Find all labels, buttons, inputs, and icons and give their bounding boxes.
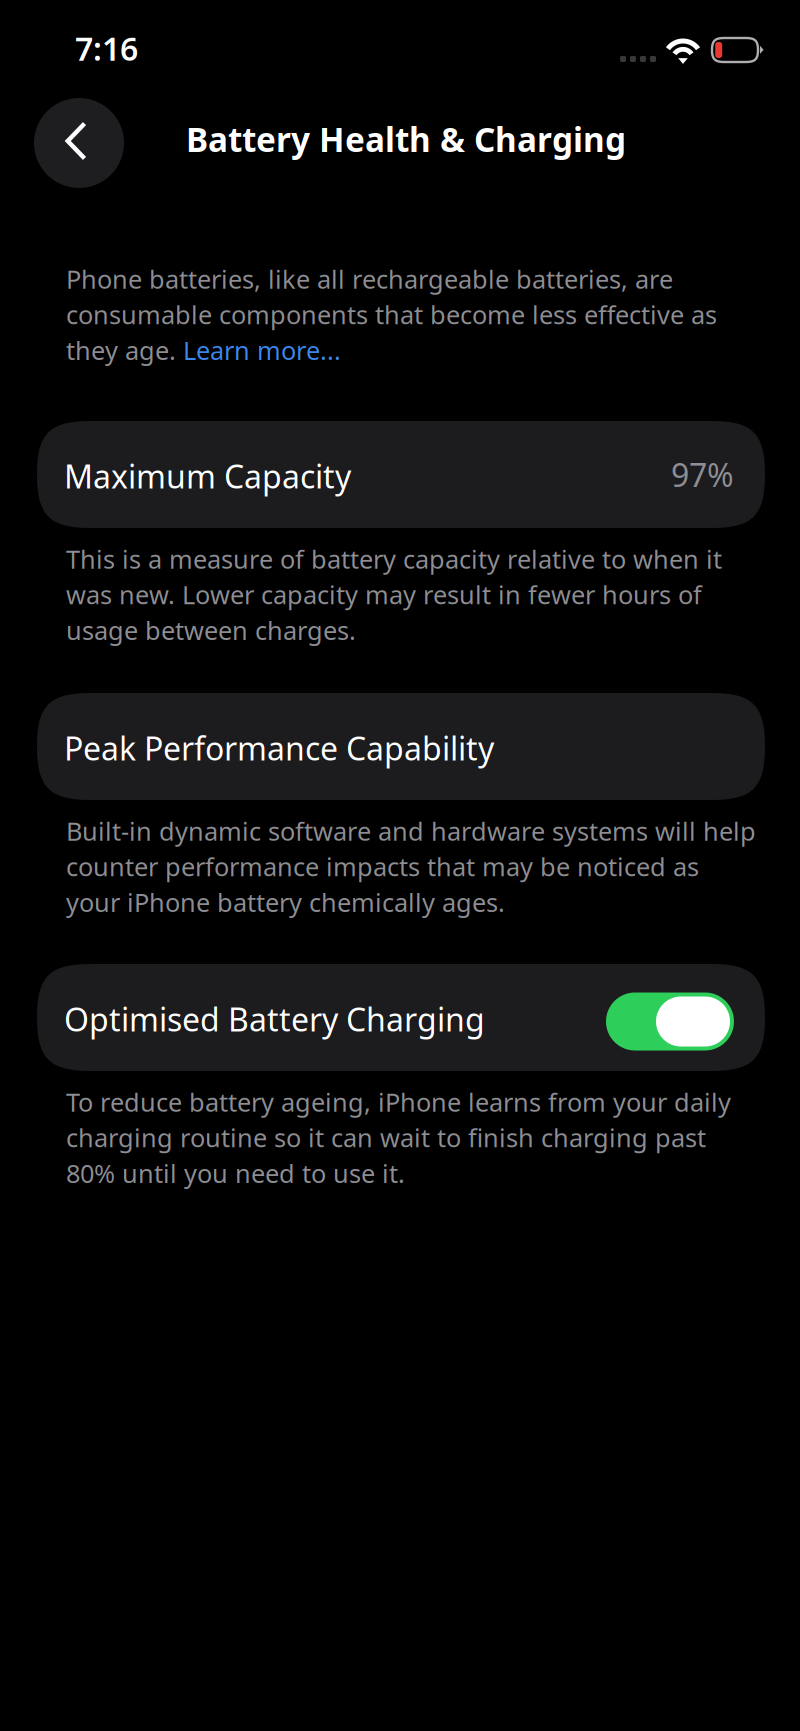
button[interactable]: Back	[34, 98, 124, 188]
staticText: Built-in dynamic software and hardware s…	[66, 814, 756, 919]
staticText: Battery Health & Charging	[186, 117, 626, 161]
button[interactable]: Peak Performance Capability	[37, 693, 765, 800]
staticText: Peak Performance Capability	[64, 727, 494, 769]
staticText: 7:16	[75, 27, 138, 69]
button[interactable]: Maximum Capacity	[37, 421, 765, 528]
staticText: Maximum Capacity	[64, 455, 351, 497]
staticText: This is a measure of battery capacity re…	[66, 542, 722, 647]
button[interactable]: Learn more	[183, 338, 341, 366]
staticText: Phone batteries, like all rechargeable b…	[66, 262, 717, 367]
staticText: 97%	[671, 453, 734, 496]
staticText: Optimised Battery Charging	[64, 998, 485, 1040]
staticText: To reduce battery ageing, iPhone learns …	[66, 1085, 731, 1190]
button[interactable]: Optimised Battery Charging	[37, 964, 765, 1071]
